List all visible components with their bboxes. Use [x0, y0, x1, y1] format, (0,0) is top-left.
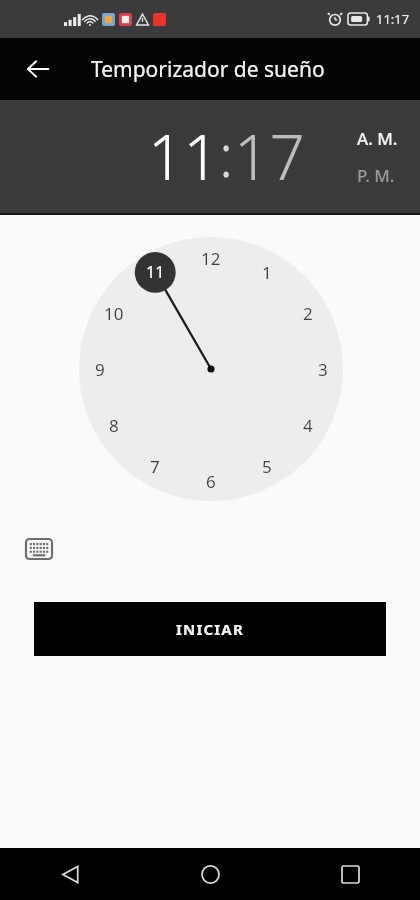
staticText: 10	[104, 302, 124, 325]
button[interactable]: Inicio	[140, 848, 280, 900]
staticText: 11	[146, 261, 165, 283]
button[interactable]: Aplicaciones recientes	[280, 848, 420, 900]
button[interactable]: 17	[234, 114, 305, 198]
button[interactable]: Introducir hora con el teclado	[19, 529, 59, 569]
button[interactable]: Atrás	[0, 848, 140, 900]
button[interactable]: A. M.	[357, 127, 398, 150]
staticText: 6	[206, 470, 216, 493]
button[interactable]: 11	[148, 114, 219, 198]
staticText: 12	[201, 247, 221, 270]
staticText: 17	[234, 114, 305, 198]
staticText: INICIAR	[176, 619, 244, 639]
staticText: 2	[303, 302, 313, 325]
staticText: 8	[109, 414, 119, 437]
button[interactable]: Atrás	[14, 45, 62, 93]
staticText: 5	[262, 455, 272, 478]
staticText: 9	[95, 358, 105, 381]
staticText: P. M.	[357, 164, 395, 187]
staticText: A. M.	[357, 127, 398, 150]
staticText: :	[219, 115, 234, 194]
staticText: 3	[318, 358, 328, 381]
staticText: 1	[262, 261, 272, 284]
staticText: 11	[148, 114, 219, 198]
button[interactable]: INICIAR	[34, 602, 386, 656]
staticText: 11:17	[376, 10, 410, 28]
button[interactable]: Selector de hora	[0, 234, 420, 519]
staticText: 4	[303, 414, 313, 437]
staticText: 7	[150, 455, 160, 478]
staticText: Temporizador de sueño	[91, 55, 325, 84]
button[interactable]: P. M.	[357, 164, 395, 187]
